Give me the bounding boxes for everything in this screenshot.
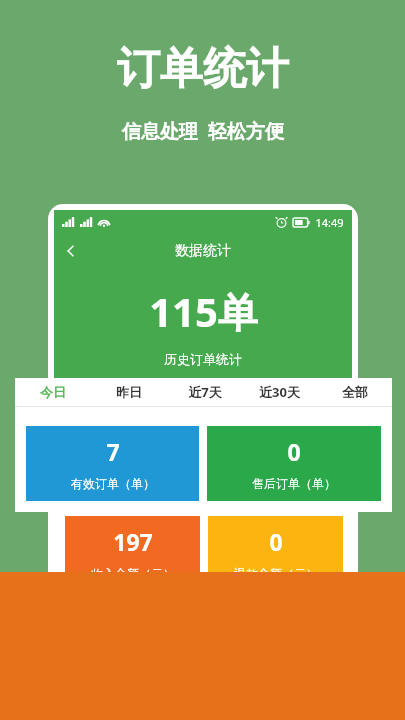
button[interactable]: 近7天 xyxy=(167,378,242,406)
button[interactable]: 0 xyxy=(208,516,343,574)
staticText: 信息处理 轻松方便 xyxy=(122,118,284,144)
staticText: 近7天 xyxy=(188,383,222,401)
staticText: 售后订单（单） xyxy=(252,476,336,491)
button[interactable]: Back xyxy=(54,234,88,268)
staticText: 近30天 xyxy=(259,383,300,401)
staticText: 今日 xyxy=(40,384,66,400)
staticText: 0 xyxy=(287,436,301,467)
button[interactable]: 全部 xyxy=(317,378,392,406)
staticText: 7 xyxy=(106,436,120,467)
button[interactable]: 今日 xyxy=(15,378,91,406)
button[interactable]: 昨日 xyxy=(91,378,167,406)
staticText: 历史订单统计 xyxy=(164,351,242,367)
staticText: 数据统计 xyxy=(175,242,231,260)
staticText: 昨日 xyxy=(116,384,142,400)
staticText: 数据统计截止到：2020/9/19 下午2:49:14 xyxy=(106,395,300,409)
staticText: 收入金额（元） xyxy=(91,566,175,574)
staticText: 订单统计 xyxy=(117,42,289,96)
staticText: 115单 xyxy=(149,284,258,339)
staticText: 有效订单（单） xyxy=(71,476,155,491)
staticText: 全部 xyxy=(342,384,368,400)
button[interactable]: 7 xyxy=(26,426,199,501)
button[interactable]: 0 xyxy=(207,426,381,501)
staticText: 退款金额（元） xyxy=(234,566,318,574)
staticText: 14:49 xyxy=(315,215,344,230)
staticText: 0 xyxy=(269,526,283,557)
staticText: 197 xyxy=(113,526,153,557)
button[interactable]: 197 xyxy=(65,516,200,574)
button[interactable]: 近30天 xyxy=(242,378,317,406)
